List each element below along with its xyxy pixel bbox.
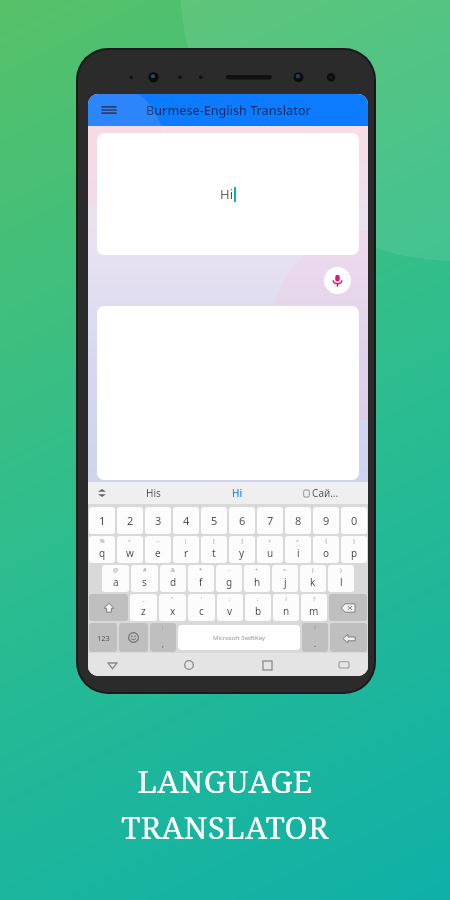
button[interactable]: '	[188, 594, 215, 621]
staticText: -	[228, 566, 230, 573]
button[interactable]: Hi	[97, 133, 359, 255]
staticText: j	[284, 575, 287, 589]
staticText: TRANSLATOR	[121, 806, 329, 848]
button[interactable]: ?	[302, 623, 328, 652]
staticText: 1	[99, 513, 106, 528]
button[interactable]: 2	[117, 507, 143, 534]
staticText: z	[141, 604, 146, 618]
staticText: 9	[323, 513, 330, 528]
button[interactable]: Сай...	[279, 482, 363, 504]
button[interactable]: &	[160, 565, 186, 592]
staticText: b	[255, 604, 262, 618]
button[interactable]: >	[285, 536, 311, 563]
staticText: v	[227, 604, 233, 618]
button[interactable]: =	[272, 565, 298, 592]
button[interactable]: _	[130, 594, 157, 621]
button[interactable]: Open navigation menu	[96, 97, 122, 123]
staticText: _	[142, 595, 145, 602]
button[interactable]: #	[131, 565, 158, 592]
button[interactable]: )	[328, 565, 354, 592]
button[interactable]: 0	[341, 507, 367, 534]
staticText: l	[340, 575, 343, 589]
staticText: [	[213, 537, 215, 544]
staticText: m	[309, 604, 319, 618]
staticText: "	[171, 595, 174, 602]
staticText: d	[170, 575, 177, 589]
button[interactable]: ?	[301, 594, 327, 621]
button[interactable]: ]	[229, 536, 255, 563]
staticText: 8	[295, 513, 302, 528]
button[interactable]: {	[313, 536, 339, 563]
staticText: /	[285, 595, 288, 602]
button[interactable]: 1	[89, 507, 115, 534]
button[interactable]: ;	[245, 594, 271, 621]
button[interactable]: Hi	[195, 482, 279, 504]
button[interactable]: 6	[229, 507, 255, 534]
button[interactable]: ^	[117, 536, 143, 563]
button[interactable]: (	[300, 565, 326, 592]
staticText: Microsoft SwiftKey	[213, 634, 265, 642]
staticText: r	[184, 546, 189, 560]
button[interactable]: 4	[173, 507, 199, 534]
button[interactable]: Emoji	[119, 623, 148, 652]
button[interactable]: Back	[102, 655, 122, 675]
staticText: {	[325, 537, 328, 544]
staticText: i	[297, 546, 300, 560]
button[interactable]: 8	[285, 507, 311, 534]
staticText: s	[142, 575, 147, 589]
button[interactable]: @	[102, 565, 129, 592]
staticText: n	[283, 604, 290, 618]
button[interactable]: Home	[179, 655, 199, 675]
staticText: Hi	[232, 486, 243, 500]
staticText: His	[146, 486, 161, 500]
button[interactable]: <	[257, 536, 283, 563]
staticText: <	[268, 537, 272, 544]
staticText: k	[310, 575, 316, 589]
staticText: :	[229, 595, 231, 602]
button[interactable]: :	[217, 594, 243, 621]
button[interactable]: *	[188, 565, 214, 592]
staticText: 4	[183, 513, 190, 528]
button[interactable]: ~	[145, 536, 171, 563]
button[interactable]: Shift	[89, 594, 128, 621]
button[interactable]: 123	[89, 623, 117, 652]
button[interactable]: "	[159, 594, 186, 621]
button[interactable]: 7	[257, 507, 283, 534]
button[interactable]: Hide keyboard	[334, 655, 354, 675]
button[interactable]: Backspace	[329, 594, 367, 621]
staticText: w	[126, 546, 134, 560]
button[interactable]: -	[216, 565, 242, 592]
staticText: 7	[267, 513, 274, 528]
staticText: h	[254, 575, 261, 589]
staticText: )	[340, 566, 342, 573]
staticText: @	[113, 566, 118, 573]
staticText: e	[155, 546, 161, 560]
button[interactable]: 3	[145, 507, 171, 534]
button[interactable]: Enter	[330, 623, 367, 652]
staticText: #	[143, 566, 147, 573]
staticText: o	[323, 546, 330, 560]
button[interactable]: Microsoft SwiftKey	[178, 625, 300, 650]
button[interactable]: |	[173, 536, 199, 563]
staticText: ~	[156, 537, 160, 544]
staticText: *	[199, 566, 203, 573]
button[interactable]: %	[89, 536, 115, 563]
staticText: 5	[211, 513, 218, 528]
button[interactable]: +	[244, 565, 270, 592]
staticText: LANGUAGE	[137, 760, 313, 802]
button[interactable]: Expand suggestions	[93, 484, 111, 502]
button[interactable]: 9	[313, 507, 339, 534]
button[interactable]: His	[111, 482, 195, 504]
button[interactable]: !	[150, 623, 176, 652]
staticText: 2	[127, 513, 134, 528]
staticText: Burmese-English Translator	[146, 102, 311, 119]
button[interactable]: Recent apps	[257, 655, 277, 675]
button[interactable]: [	[201, 536, 227, 563]
button[interactable]: Voice input	[324, 267, 351, 294]
button[interactable]: 5	[201, 507, 227, 534]
staticText: |	[184, 537, 188, 544]
button[interactable]: }	[341, 536, 367, 563]
staticText: Сай...	[312, 486, 339, 500]
button[interactable]: /	[273, 594, 299, 621]
